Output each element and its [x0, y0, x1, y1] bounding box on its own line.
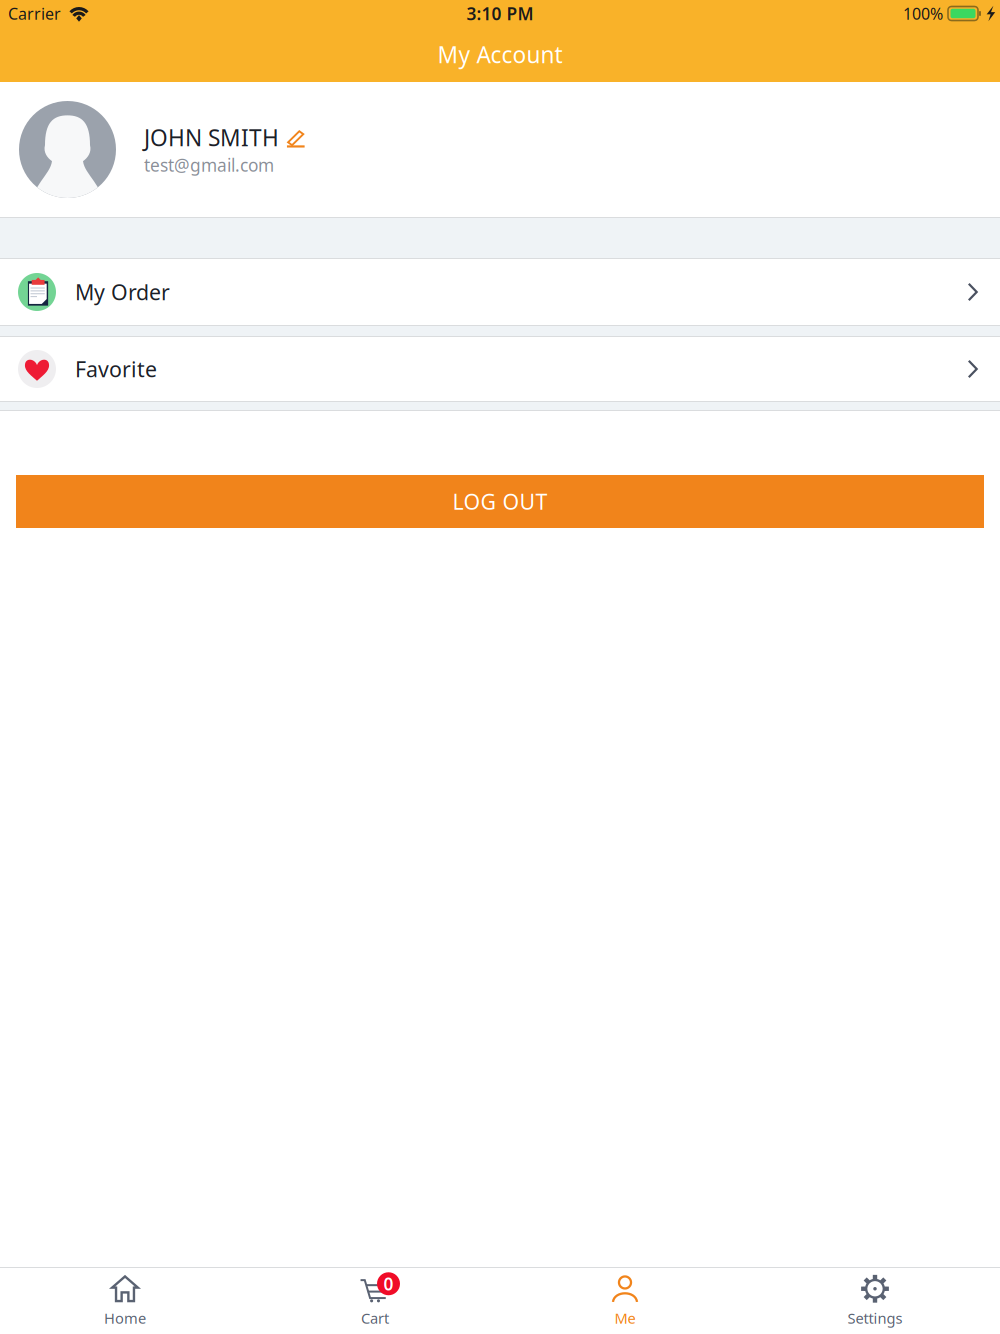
button[interactable]: Settings	[750, 1268, 1000, 1334]
staticText: Home	[104, 1308, 146, 1328]
staticText: My Account	[437, 39, 562, 69]
staticText: Settings	[847, 1308, 902, 1328]
button[interactable]: Me	[500, 1268, 750, 1334]
staticText: 100%	[903, 3, 943, 24]
button[interactable]: JOHN SMITH	[0, 82, 1000, 217]
staticText: 0	[383, 1272, 393, 1295]
staticText: Favorite	[75, 355, 157, 383]
button[interactable]: 0	[250, 1268, 500, 1334]
button[interactable]: Favorite	[0, 337, 1000, 401]
button[interactable]: Home	[0, 1268, 250, 1334]
button[interactable]: LOG OUT	[16, 475, 984, 528]
staticText: test@gmail.com	[144, 153, 274, 176]
staticText: Carrier	[8, 3, 61, 24]
button[interactable]: My Order	[0, 259, 1000, 325]
staticText: Me	[614, 1308, 635, 1328]
staticText: Cart	[361, 1308, 389, 1328]
staticText: My Order	[75, 278, 170, 306]
staticText: JOHN SMITH	[144, 122, 279, 152]
staticText: 3:10 PM	[466, 2, 533, 25]
staticText: LOG OUT	[452, 487, 547, 516]
